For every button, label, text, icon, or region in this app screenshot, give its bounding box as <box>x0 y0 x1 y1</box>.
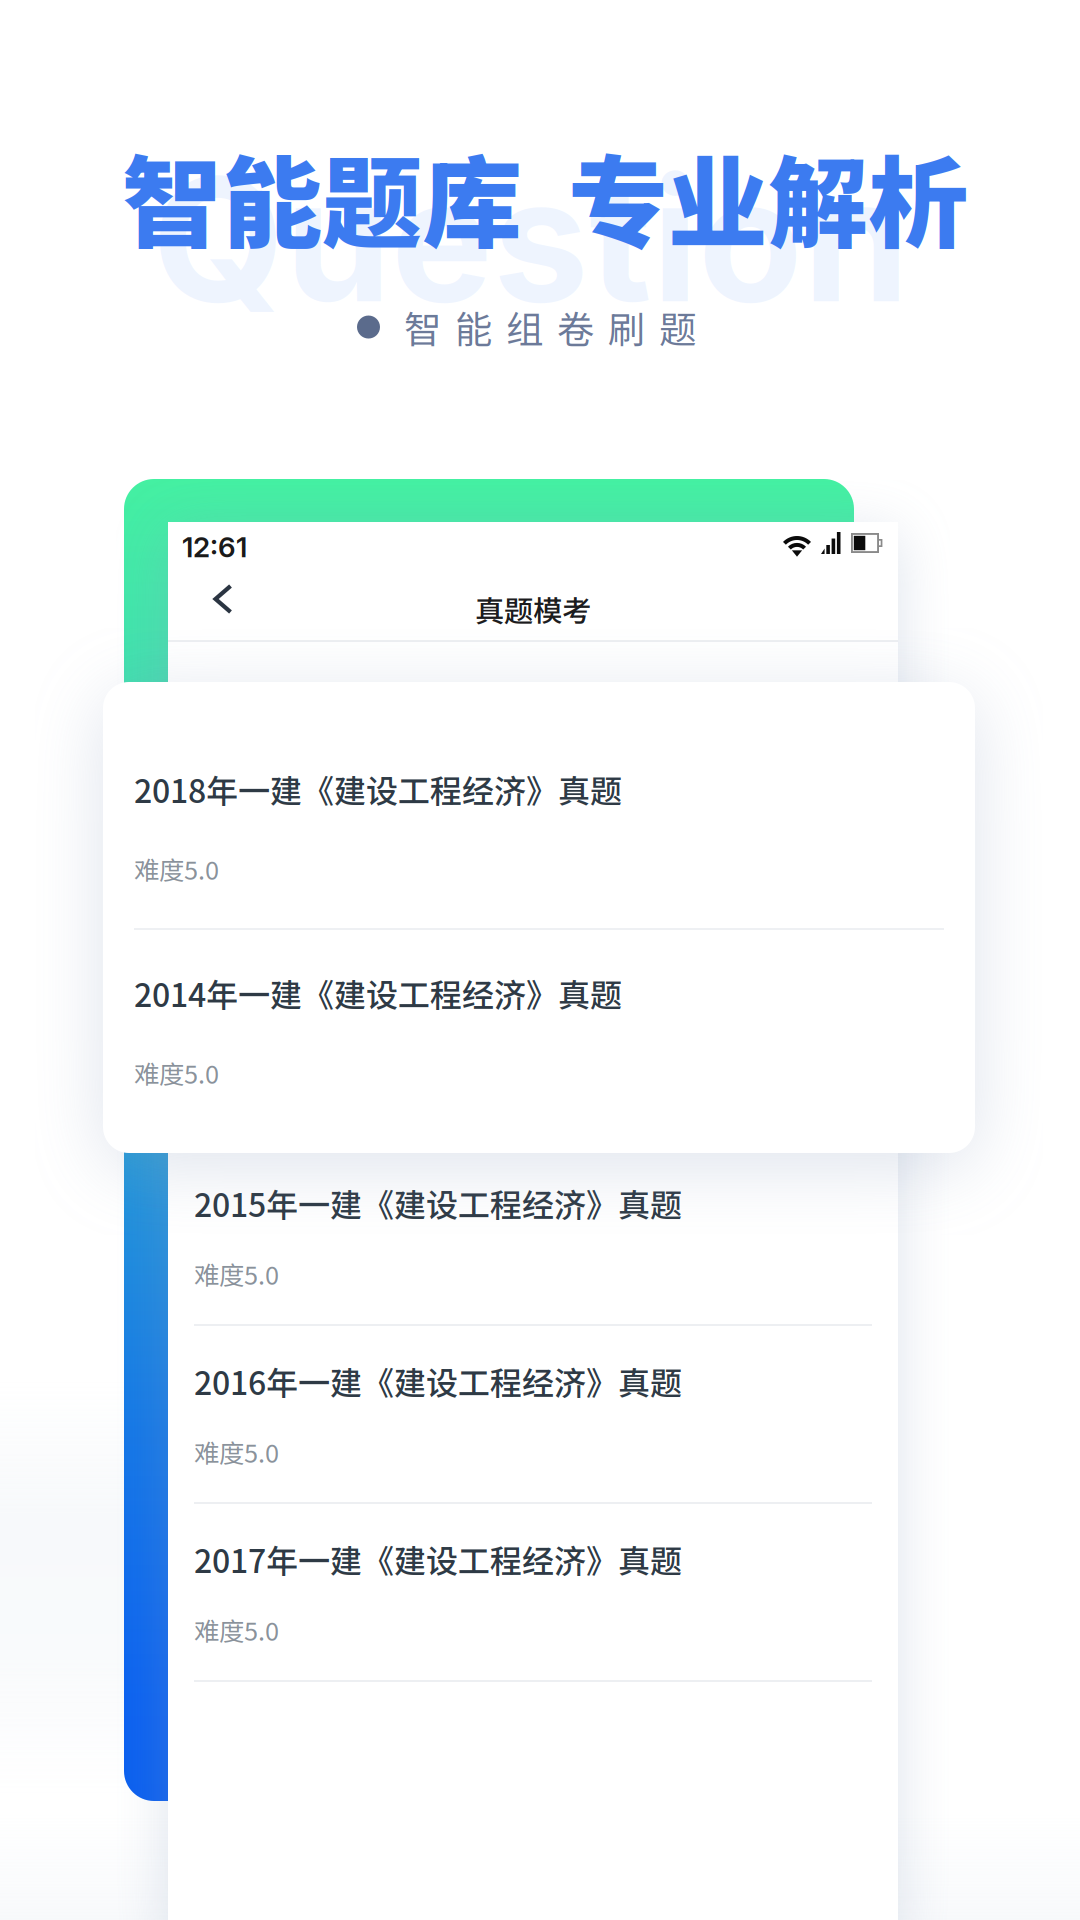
staticText: 难度5.0 <box>134 1054 219 1091</box>
button[interactable]: 2015年一建《建设工程经济》真题 <box>168 1148 898 1326</box>
staticText: 智能组卷刷题 <box>404 300 696 354</box>
staticText: 智能题库 专业解析 <box>122 124 968 269</box>
staticText: 12:61 <box>182 530 247 564</box>
staticText: 2016年一建《建设工程经济》真题 <box>194 1358 682 1404</box>
staticText: 2014年一建《建设工程经济》真题 <box>134 970 622 1016</box>
staticText: 2017年一建《建设工程经济》真题 <box>194 1536 682 1582</box>
staticText: 难度5.0 <box>134 850 219 887</box>
staticText: Question <box>152 136 909 342</box>
staticText: 2018年一建《建设工程经济》真题 <box>134 766 622 812</box>
button[interactable]: 2017年一建《建设工程经济》真题 <box>168 1504 898 1682</box>
button[interactable]: 2016年一建《建设工程经济》真题 <box>168 1326 898 1504</box>
staticText: 难度5.0 <box>194 1433 279 1470</box>
staticText: 2015年一建《建设工程经济》真题 <box>194 1180 682 1226</box>
staticText: 难度5.0 <box>194 1611 279 1648</box>
staticText: 真题模考 <box>475 588 591 630</box>
button[interactable]: 2018年一建《建设工程经济》真题 <box>103 726 975 930</box>
button[interactable]: 2014年一建《建设工程经济》真题 <box>103 930 975 1147</box>
staticText: 难度5.0 <box>194 1255 279 1292</box>
button[interactable]: Back <box>184 568 262 630</box>
